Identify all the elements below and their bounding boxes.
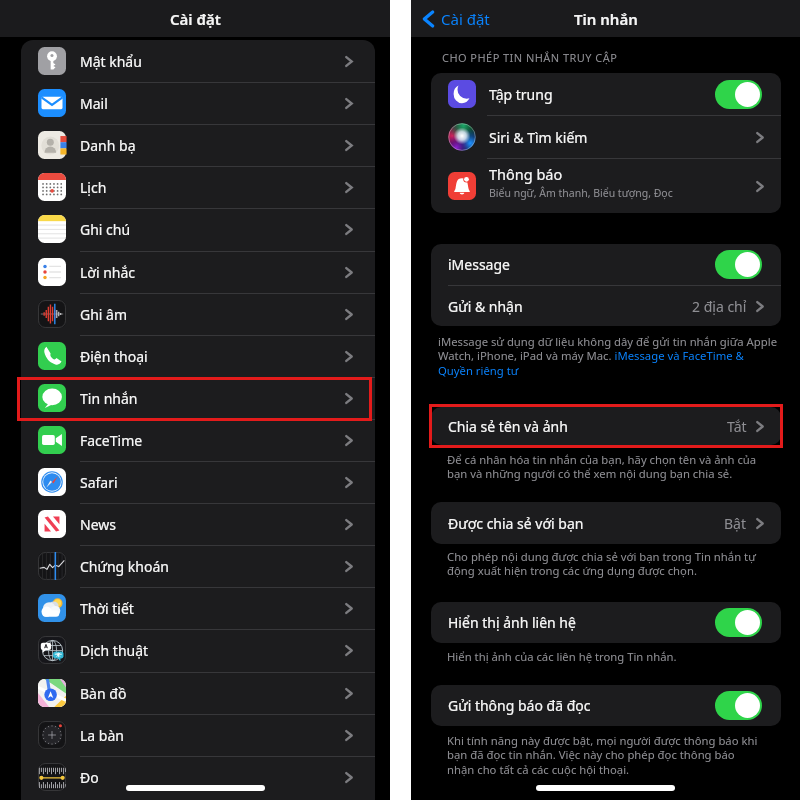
staticText: Biểu ngữ, Âm thanh, Biểu tượng, Đọc: [489, 186, 673, 200]
button[interactable]: Siri & Tìm kiếm: [431, 116, 781, 158]
staticText: Mail: [80, 94, 108, 113]
button[interactable]: Gửi thông báo đã đọc: [431, 685, 781, 726]
staticText: Tập trung: [489, 85, 553, 104]
staticText: Dịch thuật: [80, 641, 149, 660]
button[interactable]: Điện thoại: [21, 335, 375, 377]
staticText: Được chia sẻ với bạn: [448, 514, 584, 533]
button[interactable]: Thời tiết: [21, 587, 375, 629]
staticText: Ghi chú: [80, 220, 131, 239]
button[interactable]: FaceTime: [21, 419, 375, 461]
button[interactable]: Hiển thị ảnh liên hệ: [431, 602, 781, 643]
button[interactable]: Cài đặt: [419, 5, 494, 33]
staticText: Lời nhắc: [80, 263, 136, 282]
staticText: Safari: [80, 473, 118, 492]
button[interactable]: Tin nhắn: [21, 377, 375, 419]
button[interactable]: Thông báo: [431, 159, 781, 213]
staticText: Đo: [80, 768, 99, 787]
staticText: Bàn đồ: [80, 684, 127, 703]
button[interactable]: Toggle: [715, 691, 762, 720]
staticText: Cài đặt: [170, 9, 221, 29]
button[interactable]: Chia sẻ tên và ảnh: [431, 407, 781, 445]
button[interactable]: Ghi chú: [21, 208, 375, 250]
button[interactable]: La bàn: [21, 714, 375, 756]
staticText: 2 địa chỉ: [692, 297, 747, 316]
staticText: FaceTime: [80, 431, 143, 450]
button[interactable]: News: [21, 503, 375, 545]
staticText: Gửi thông báo đã đọc: [448, 696, 591, 715]
staticText: La bàn: [80, 726, 124, 745]
button[interactable]: Gửi & nhận: [431, 286, 781, 326]
staticText: Để cá nhân hóa tin nhắn của bạn, hãy chọ…: [447, 452, 771, 482]
button[interactable]: Toggle: [715, 250, 762, 279]
staticText: Danh bạ: [80, 136, 136, 155]
staticText: Ghi âm: [80, 305, 128, 324]
staticText: Bật: [724, 514, 747, 533]
button[interactable]: Mail: [21, 82, 375, 124]
staticText: Thông báo: [489, 164, 563, 184]
button[interactable]: Lịch: [21, 166, 375, 208]
button[interactable]: iMessage: [431, 244, 781, 285]
button[interactable]: Tập trung: [431, 73, 781, 115]
button[interactable]: Chứng khoán: [21, 545, 375, 587]
staticText: News: [80, 515, 116, 534]
button[interactable]: Dịch thuật: [21, 629, 375, 671]
staticText: Lịch: [80, 178, 107, 197]
staticText: Chứng khoán: [80, 557, 169, 576]
button[interactable]: Toggle: [715, 80, 762, 109]
staticText: Khi tính năng này được bật, mọi người đư…: [447, 733, 760, 778]
staticText: Tin nhắn: [574, 9, 638, 29]
staticText: Cài đặt: [441, 9, 490, 29]
staticText: Thời tiết: [80, 599, 134, 618]
staticText: Gửi & nhận: [448, 297, 523, 316]
staticText: CHO PHÉP TIN NHẮN TRUY CẬP: [442, 50, 618, 65]
staticText: iMessage: [448, 255, 510, 274]
button[interactable]: Được chia sẻ với bạn: [431, 502, 781, 544]
button[interactable]: Mật khẩu: [21, 40, 375, 82]
staticText: Điện thoại: [80, 347, 148, 366]
button[interactable]: Lời nhắc: [21, 251, 375, 293]
staticText: Hiển thị ảnh liên hệ: [448, 613, 576, 632]
staticText: Siri & Tìm kiếm: [489, 128, 588, 147]
staticText: Hiển thị ảnh của các liên hệ trong Tin n…: [447, 649, 677, 664]
staticText: Tắt: [727, 417, 747, 436]
button[interactable]: Đo: [21, 756, 375, 798]
staticText: Mật khẩu: [80, 52, 142, 71]
button[interactable]: Safari: [21, 461, 375, 503]
staticText: Chia sẻ tên và ảnh: [448, 417, 568, 436]
button[interactable]: Ghi âm: [21, 293, 375, 335]
button[interactable]: Toggle: [715, 608, 762, 637]
staticText: Cho phép nội dung được chia sẻ với bạn t…: [447, 549, 782, 579]
button[interactable]: Bàn đồ: [21, 672, 375, 714]
staticText: Tin nhắn: [80, 389, 138, 408]
button[interactable]: Danh bạ: [21, 124, 375, 166]
staticText: iMessage sử dụng dữ liệu không dây để gử…: [438, 334, 779, 379]
